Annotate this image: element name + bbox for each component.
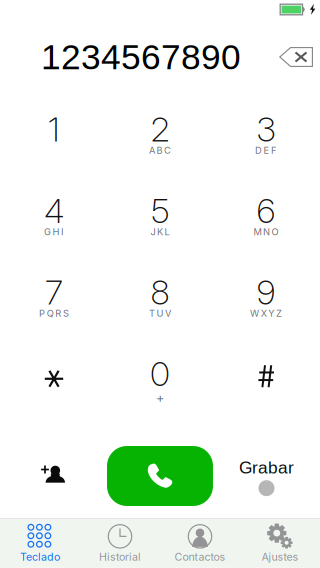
staticText: 4 (44, 190, 64, 231)
button[interactable]: 6 (213, 177, 319, 258)
staticText: 3 (256, 109, 275, 150)
button[interactable]: Historial (80, 519, 160, 568)
button[interactable]: Grabar (213, 446, 320, 506)
staticText: 5 (151, 190, 169, 231)
staticText: Contactos (174, 550, 225, 563)
staticText: + (156, 390, 164, 405)
staticText: 1 (48, 109, 60, 150)
button[interactable]: 0 (107, 340, 213, 421)
button[interactable]: Ajustes (240, 519, 320, 568)
button[interactable]: 2 (107, 95, 213, 177)
staticText: 1234567890 (41, 37, 241, 77)
staticText: Teclado (20, 550, 60, 563)
button[interactable]: 9 (213, 258, 319, 340)
button[interactable]: Contactos (160, 519, 240, 568)
staticText: WXYZ (250, 308, 282, 319)
staticText: DEF (255, 145, 277, 156)
staticText: TUV (149, 308, 171, 319)
button[interactable]: Pound (213, 340, 319, 421)
staticText: JKL (150, 226, 170, 237)
button[interactable]: Star (1, 340, 107, 421)
staticText: PQRS (39, 308, 69, 319)
staticText: 7 (45, 272, 63, 313)
button[interactable]: Teclado (0, 519, 80, 568)
staticText: Grabar (239, 458, 294, 477)
staticText: 8 (150, 272, 169, 313)
button[interactable]: 7 (1, 258, 107, 340)
staticText: 6 (256, 190, 275, 231)
staticText: 9 (256, 272, 275, 313)
staticText: ABC (149, 145, 171, 156)
button[interactable]: 3 (213, 95, 319, 177)
button[interactable]: Call (107, 446, 213, 506)
staticText: MNO (253, 226, 279, 237)
staticText: Ajustes (261, 550, 298, 563)
button[interactable]: 1 (1, 95, 107, 177)
staticText: 2 (150, 109, 169, 150)
staticText: GHI (44, 226, 64, 237)
staticText: Historial (99, 550, 141, 563)
staticText: 0 (150, 353, 170, 394)
button[interactable]: 8 (107, 258, 213, 340)
button[interactable]: Delete (272, 37, 320, 77)
button[interactable]: 4 (1, 177, 107, 258)
button[interactable]: Add contact (0, 446, 107, 506)
button[interactable]: 5 (107, 177, 213, 258)
